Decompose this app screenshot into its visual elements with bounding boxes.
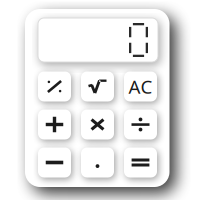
button[interactable]: Minus [38, 147, 71, 177]
button[interactable]: Percent [38, 71, 71, 101]
button[interactable]: Square root [81, 71, 114, 101]
staticText: AC [128, 74, 152, 99]
button[interactable]: Multiply [81, 109, 114, 139]
button[interactable]: Decimal point [81, 147, 114, 177]
button[interactable]: Plus [38, 109, 71, 139]
button[interactable]: AC [124, 71, 157, 101]
button[interactable]: Divide [124, 109, 157, 139]
button[interactable]: Equals [124, 147, 157, 177]
